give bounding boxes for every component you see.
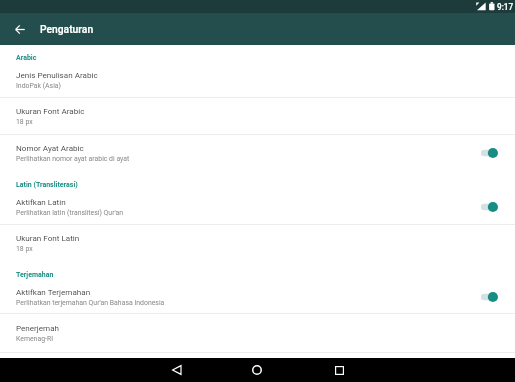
staticText: Terjemahan xyxy=(16,271,54,279)
button[interactable]: Toggle setting xyxy=(480,201,498,213)
staticText: Aktifkan Latin xyxy=(16,197,66,206)
staticText: Perlihatkan latin (translitesi) Qur'an xyxy=(16,209,124,217)
button[interactable]: Toggle setting xyxy=(480,147,498,159)
staticText: 18 px xyxy=(16,118,33,126)
button[interactable]: Recent apps xyxy=(319,358,359,382)
staticText: 9:17 xyxy=(497,2,514,12)
button[interactable]: Back xyxy=(6,15,34,43)
button[interactable]: Toggle setting xyxy=(480,291,498,303)
staticText: Nomor Ayat Arabic xyxy=(16,143,84,152)
button[interactable]: Aktifkan Latin xyxy=(0,194,515,225)
staticText: Perlihatkan terjemahan Qur'an Bahasa Ind… xyxy=(16,299,165,307)
button[interactable]: Ukuran Font Arabic xyxy=(0,98,515,135)
staticText: Ukuran Font Latin xyxy=(16,233,80,242)
button[interactable]: Aktifkan Terjemahan xyxy=(0,284,515,314)
button[interactable]: Home xyxy=(237,358,277,382)
staticText: Perlihatkan nomor ayat arabic di ayat xyxy=(16,155,130,163)
button[interactable]: Back xyxy=(156,358,196,382)
staticText: IndoPak (Asia) xyxy=(16,82,61,90)
button[interactable]: Ukuran Font Latin xyxy=(0,225,515,262)
staticText: Aktifkan Terjemahan xyxy=(16,287,91,296)
staticText: Arabic xyxy=(16,54,37,62)
button[interactable]: Jenis Penulisan Arabic xyxy=(0,68,515,98)
other: Battery xyxy=(489,0,495,13)
button[interactable]: Nomor Ayat Arabic xyxy=(0,135,515,172)
staticText: Latin (Transliterasi) xyxy=(16,181,78,189)
other: Mobile signal xyxy=(476,0,486,13)
staticText: Kemenag-RI xyxy=(16,335,54,343)
staticText: 18 px xyxy=(16,245,33,253)
staticText: Pengaturan xyxy=(40,23,94,35)
staticText: Jenis Penulisan Arabic xyxy=(16,70,98,79)
staticText: Penerjemah xyxy=(16,323,60,332)
button[interactable]: Penerjemah xyxy=(0,314,515,353)
staticText: Ukuran Font Arabic xyxy=(16,106,85,115)
